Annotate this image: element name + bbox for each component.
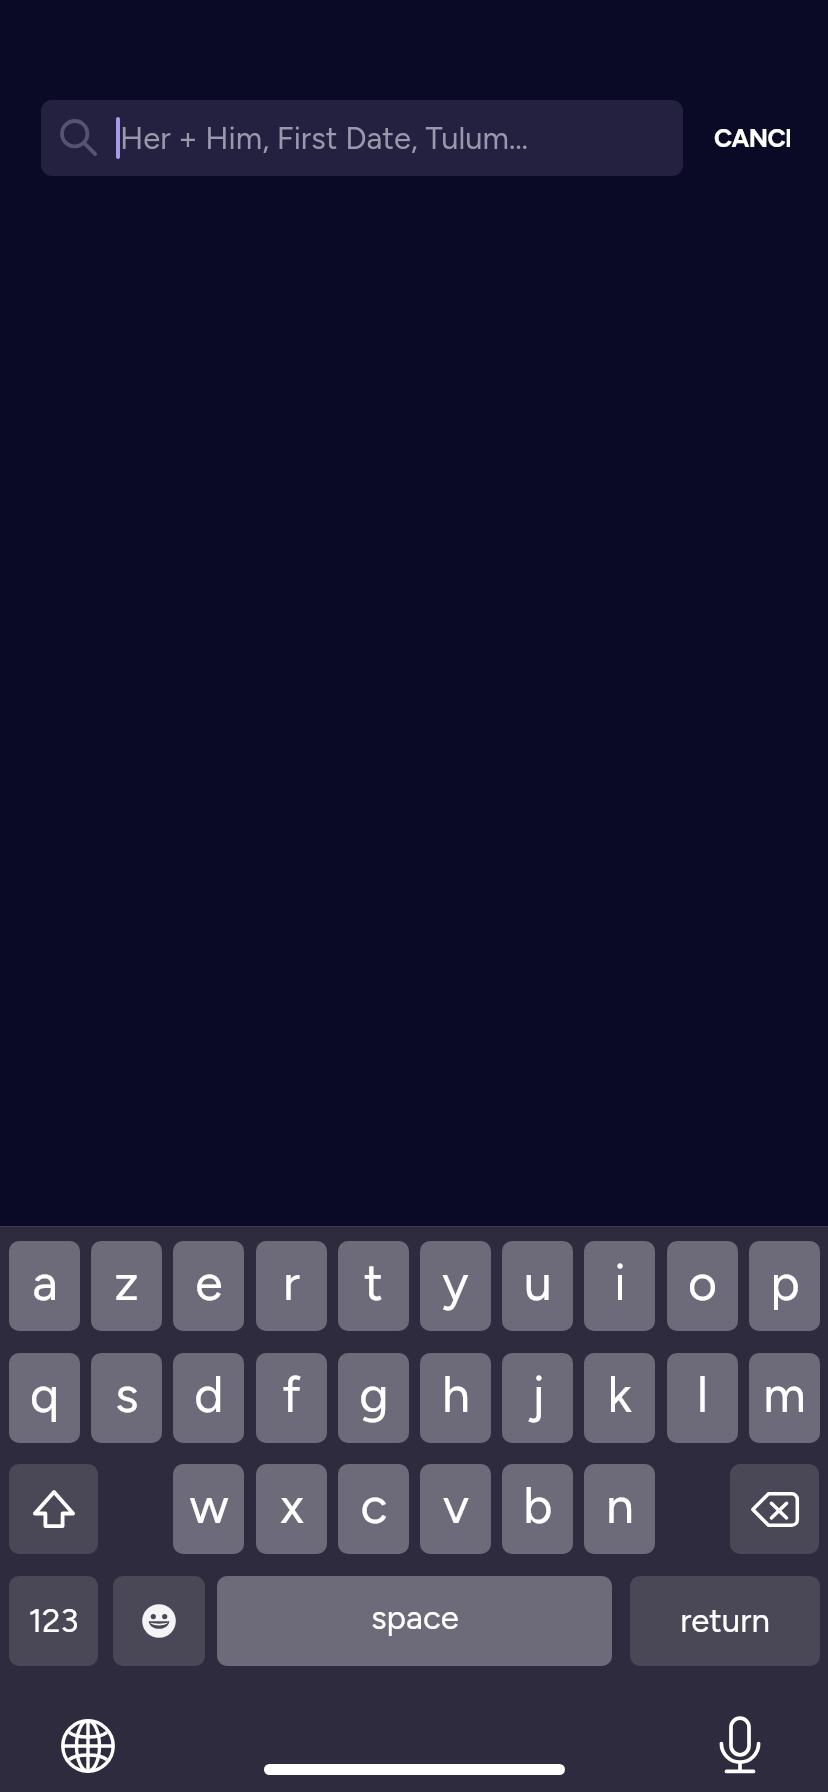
button[interactable]: p [749, 1241, 820, 1331]
button[interactable]: Shift [9, 1464, 98, 1554]
staticText: space [371, 1598, 459, 1638]
button[interactable]: f [256, 1353, 327, 1443]
staticText: q [30, 1364, 59, 1424]
staticText: m [763, 1364, 806, 1424]
button[interactable]: u [502, 1241, 573, 1331]
staticText: w [189, 1475, 229, 1535]
staticText: i [614, 1252, 626, 1312]
button[interactable]: z [91, 1241, 162, 1331]
button[interactable]: y [420, 1241, 491, 1331]
staticText: u [524, 1252, 552, 1312]
staticText: v [443, 1475, 469, 1535]
staticText: d [194, 1364, 224, 1424]
button[interactable]: e [173, 1241, 244, 1331]
button[interactable]: Dictation [704, 1710, 776, 1782]
button[interactable]: h [420, 1353, 491, 1443]
button[interactable]: Her + Him, First Date, Tulum… [41, 100, 683, 176]
staticText: o [688, 1252, 717, 1312]
button[interactable]: t [338, 1241, 409, 1331]
staticText: x [280, 1475, 304, 1535]
button[interactable]: l [667, 1353, 738, 1443]
staticText: 123 [28, 1601, 79, 1641]
button[interactable]: 123 [9, 1576, 98, 1666]
button[interactable]: x [256, 1464, 327, 1554]
button[interactable]: return [630, 1576, 820, 1666]
button[interactable]: j [502, 1353, 573, 1443]
button[interactable]: c [338, 1464, 409, 1554]
button[interactable]: space [217, 1576, 612, 1666]
staticText: h [442, 1364, 470, 1424]
staticText: n [606, 1475, 634, 1535]
button[interactable]: n [584, 1464, 655, 1554]
button[interactable]: CANCEL [714, 110, 790, 166]
staticText: j [531, 1364, 545, 1424]
button[interactable]: g [338, 1353, 409, 1443]
staticText: CANCEL [714, 123, 790, 153]
staticText: p [770, 1252, 800, 1312]
button[interactable]: m [749, 1353, 820, 1443]
staticText: a [32, 1252, 58, 1312]
button[interactable]: o [667, 1241, 738, 1331]
button[interactable]: r [256, 1241, 327, 1331]
staticText: g [359, 1364, 389, 1424]
staticText: b [523, 1475, 553, 1535]
button[interactable]: q [9, 1353, 80, 1443]
button[interactable]: w [173, 1464, 244, 1554]
staticText: r [283, 1252, 300, 1312]
button[interactable]: Change keyboard [52, 1710, 124, 1782]
button[interactable]: s [91, 1353, 162, 1443]
button[interactable]: d [173, 1353, 244, 1443]
staticText: c [360, 1475, 388, 1535]
button[interactable]: a [9, 1241, 80, 1331]
staticText: f [282, 1364, 301, 1424]
staticText: l [697, 1364, 708, 1424]
staticText: y [442, 1252, 469, 1312]
button[interactable]: b [502, 1464, 573, 1554]
staticText: z [114, 1252, 139, 1312]
staticText: return [680, 1601, 770, 1641]
staticText: Her + Him, First Date, Tulum… [120, 120, 528, 157]
staticText: e [195, 1252, 223, 1312]
button[interactable]: k [584, 1353, 655, 1443]
button[interactable]: Backspace [730, 1464, 819, 1554]
staticText: s [115, 1364, 139, 1424]
button[interactable]: Emoji [113, 1576, 205, 1666]
staticText: t [364, 1252, 383, 1312]
button[interactable]: i [584, 1241, 655, 1331]
button[interactable]: v [420, 1464, 491, 1554]
staticText: k [607, 1364, 632, 1424]
